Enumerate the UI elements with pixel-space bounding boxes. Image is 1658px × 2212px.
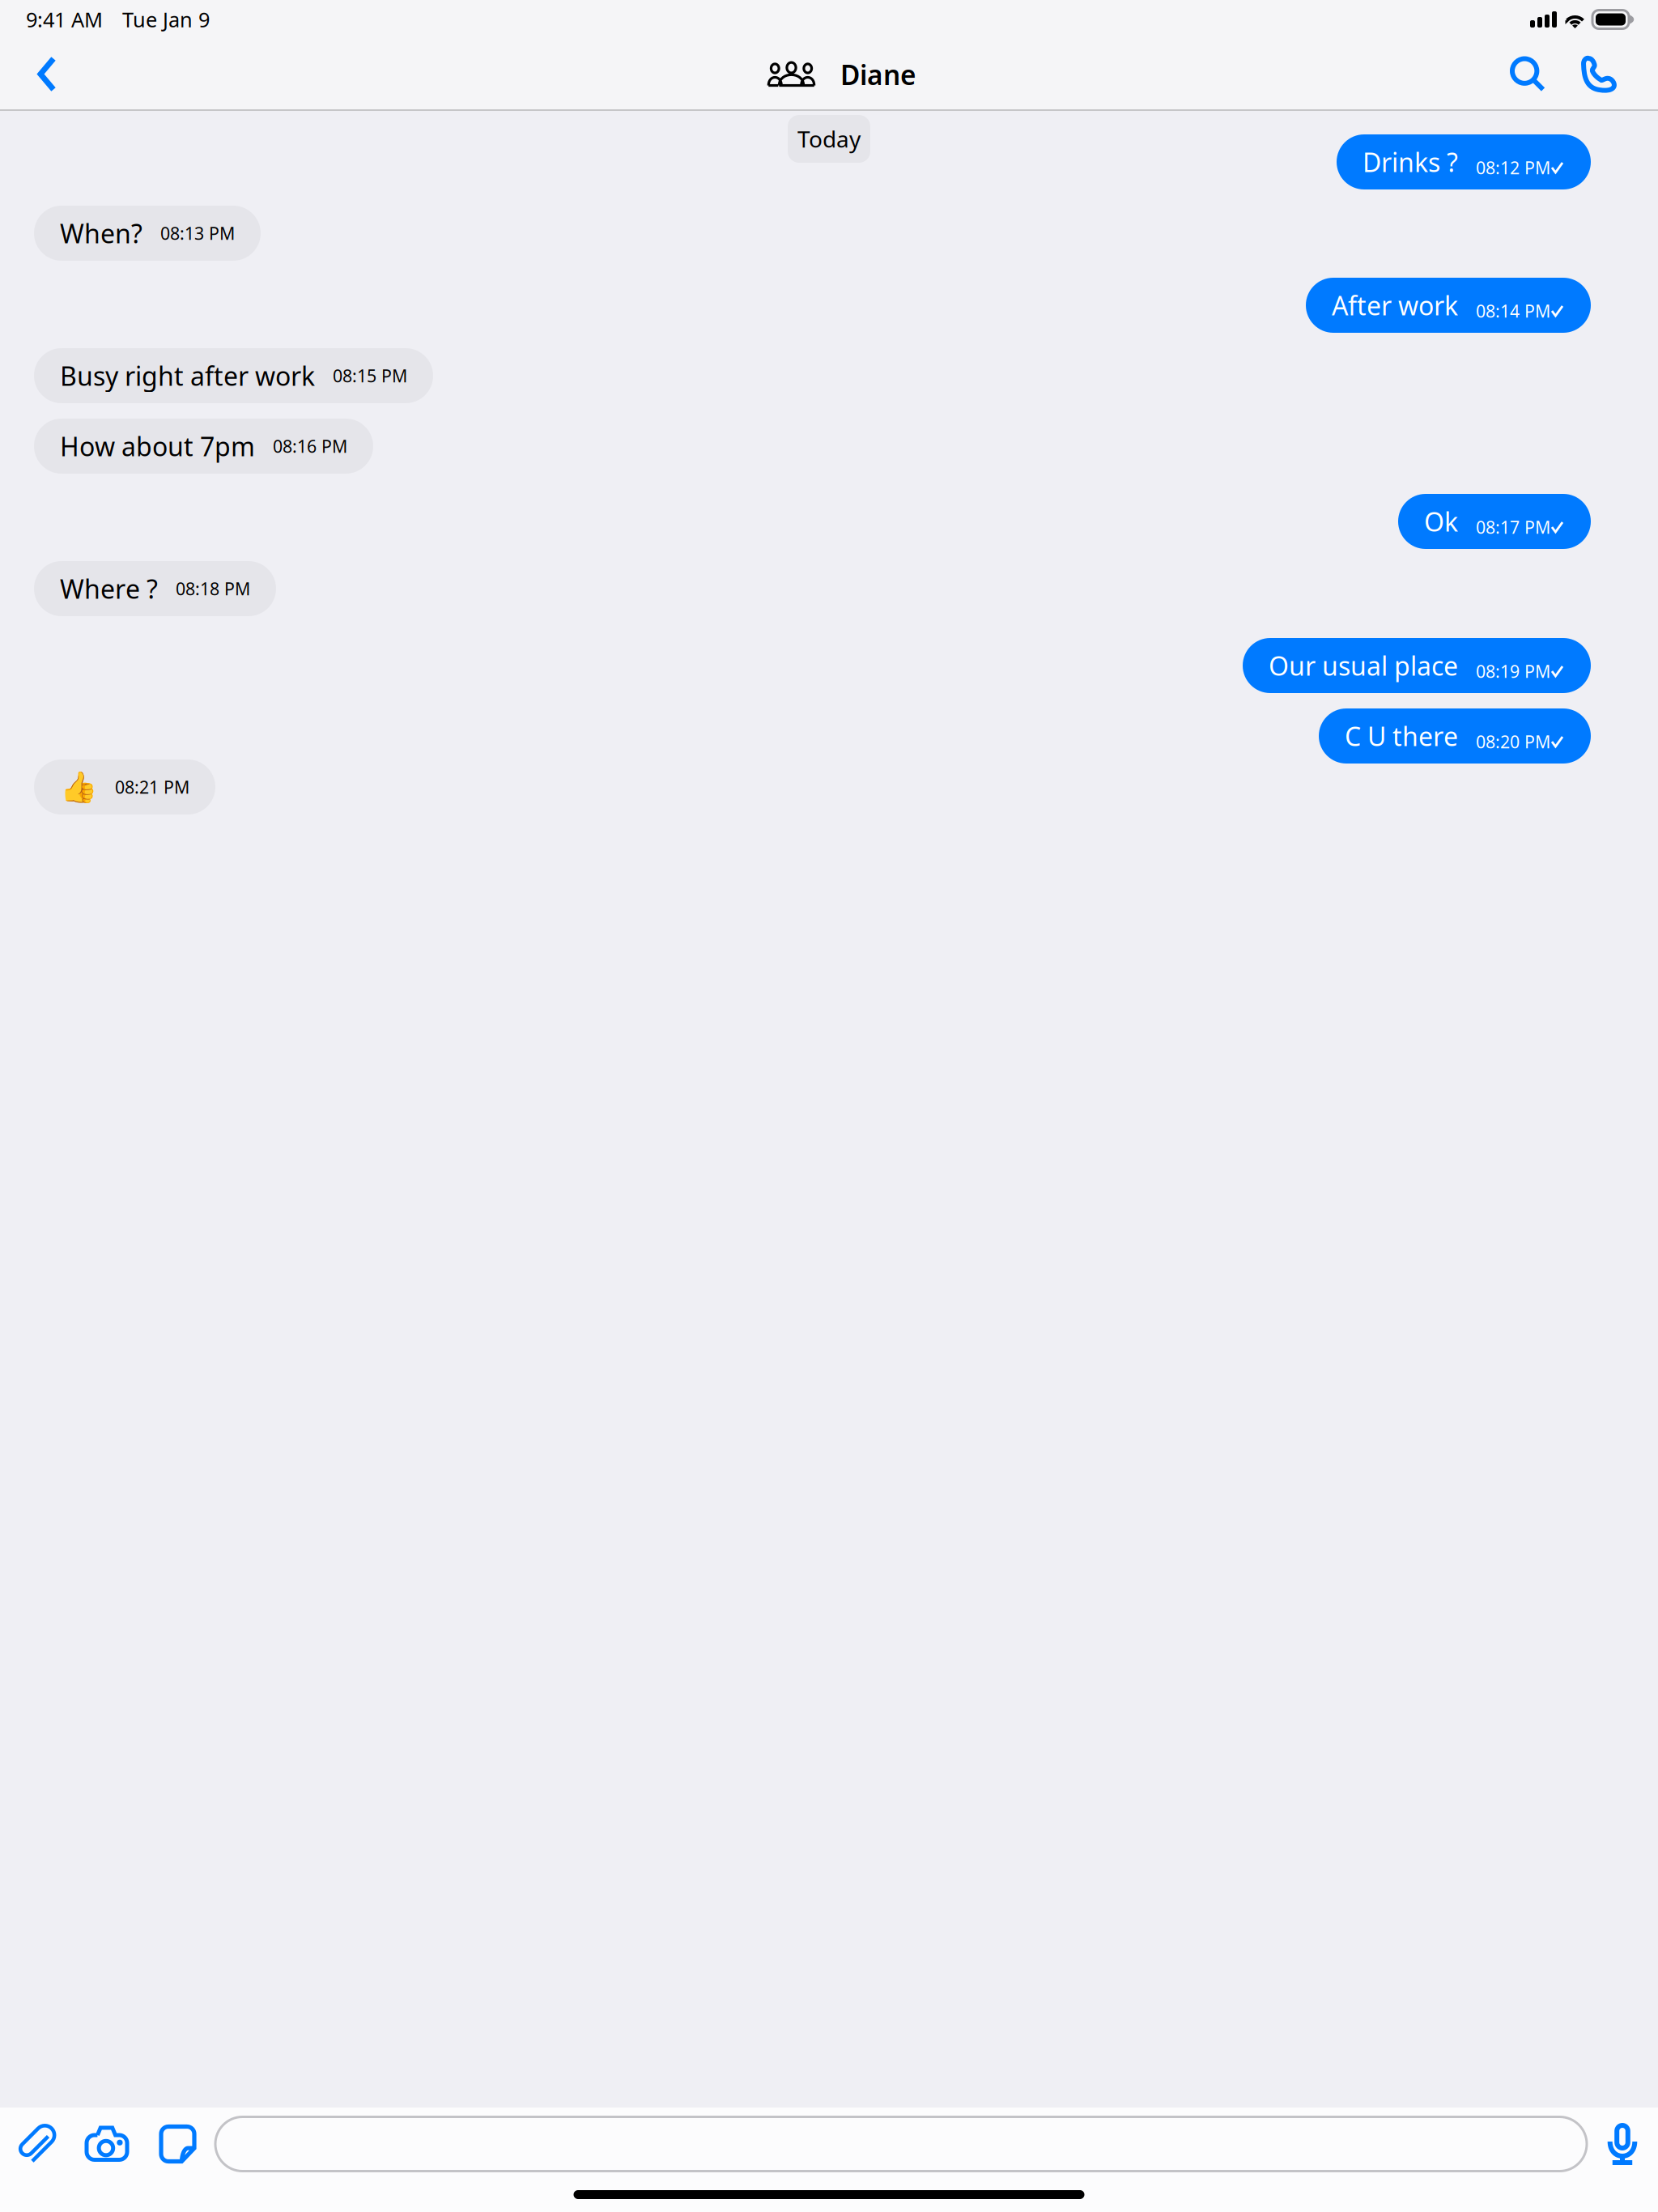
staticText: Where ? — [60, 571, 158, 606]
button[interactable]: iMessage text field — [215, 2117, 1609, 2171]
staticText: 9:41 AM — [26, 6, 103, 33]
staticText: Our usual place — [1269, 648, 1458, 683]
button[interactable]: Where ? — [34, 561, 276, 616]
button[interactable]: 👍 — [34, 759, 215, 815]
staticText: Busy right after work — [60, 359, 315, 393]
staticText: 08:18 PM — [176, 577, 250, 600]
button[interactable]: Ok — [1398, 494, 1591, 549]
staticText: How about 7pm — [60, 429, 255, 463]
staticText: C U there — [1345, 719, 1458, 753]
staticText: 08:13 PM — [160, 222, 235, 245]
staticText: 08:16 PM — [273, 435, 347, 458]
button[interactable]: After work — [1306, 278, 1591, 333]
button[interactable]: How about 7pm — [34, 419, 373, 474]
button[interactable]: Busy right after work — [34, 348, 433, 403]
button[interactable]: Our usual place — [1243, 638, 1591, 693]
button[interactable]: Drinks ? — [1337, 134, 1591, 189]
staticText: After work — [1332, 288, 1458, 322]
staticText: 08:19 PM — [1476, 660, 1550, 683]
button[interactable]: Call — [1563, 39, 1635, 109]
staticText: 08:12 PM — [1476, 156, 1550, 179]
staticText: 👍 — [60, 770, 97, 804]
button[interactable]: Stickers — [161, 2127, 215, 2161]
button[interactable]: Dictate — [1609, 2124, 1658, 2164]
button[interactable]: Search — [1492, 39, 1563, 109]
button[interactable]: Back — [0, 39, 80, 109]
staticText: Diane — [840, 57, 916, 93]
staticText: Today — [797, 124, 861, 154]
staticText: Drinks ? — [1363, 145, 1458, 179]
button[interactable]: Attach file — [0, 2121, 85, 2167]
button[interactable]: C U there — [1319, 708, 1591, 764]
staticText: 08:21 PM — [115, 775, 189, 798]
staticText: Ok — [1424, 504, 1458, 539]
staticText: 08:17 PM — [1476, 516, 1550, 539]
staticText: 08:14 PM — [1476, 299, 1550, 322]
staticText: 08:20 PM — [1476, 730, 1550, 753]
button[interactable]: When? — [34, 206, 261, 261]
staticText: 08:15 PM — [333, 364, 407, 387]
staticText: Tue Jan 9 — [122, 6, 210, 33]
button[interactable]: Camera — [85, 2126, 161, 2162]
staticText: When? — [60, 216, 142, 250]
button[interactable]: Diane — [768, 57, 916, 93]
